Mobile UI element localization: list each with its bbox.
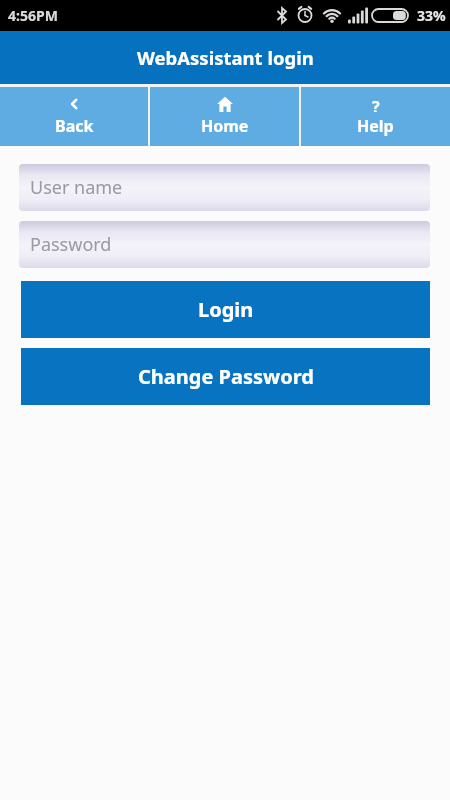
staticText: WebAssistant login xyxy=(137,45,314,70)
staticText: Back xyxy=(55,115,94,137)
staticText: Change Password xyxy=(138,363,314,390)
staticText: 4:56PM xyxy=(8,6,58,25)
staticText: User name xyxy=(30,175,123,200)
staticText: Home xyxy=(201,115,249,137)
staticText: Help xyxy=(357,115,394,137)
button[interactable]: User name xyxy=(19,164,430,211)
button[interactable]: Password xyxy=(19,221,430,268)
staticText: Login xyxy=(198,296,254,323)
staticText: 33% xyxy=(417,6,446,25)
button[interactable]: Login xyxy=(21,281,430,338)
staticText: Password xyxy=(30,232,112,257)
button[interactable]: Back xyxy=(0,87,148,146)
button[interactable]: Home xyxy=(150,87,299,146)
staticText: ? xyxy=(372,96,380,112)
button[interactable]: ? xyxy=(301,87,450,146)
button[interactable]: Change Password xyxy=(21,348,430,405)
